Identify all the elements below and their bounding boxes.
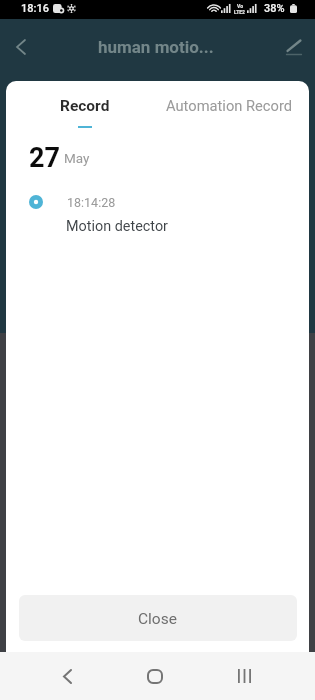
button[interactable]: Recent apps [222,654,266,698]
staticText: LTE2 [234,9,245,15]
staticText: 38% [264,2,285,15]
staticText: Automation Record [166,97,293,114]
staticText: May [64,150,90,166]
button[interactable]: 18:14:28 [6,195,309,212]
staticText: 27 [29,142,60,174]
button[interactable]: Back [45,654,89,698]
staticText: 18:16 [21,2,49,15]
button[interactable]: Navigate up [0,25,43,69]
staticText: Record [60,97,110,115]
staticText: Close [138,610,177,628]
staticText: Vo [237,3,243,9]
button[interactable]: Home [133,654,177,698]
button[interactable]: Edit [272,27,315,71]
button[interactable]: Automation Record [158,81,309,131]
staticText: 18:14:28 [67,195,116,210]
staticText: human motio... [98,37,214,57]
staticText: Motion detector [66,218,168,235]
button[interactable]: Close [19,595,297,641]
button[interactable]: Record [6,81,158,131]
